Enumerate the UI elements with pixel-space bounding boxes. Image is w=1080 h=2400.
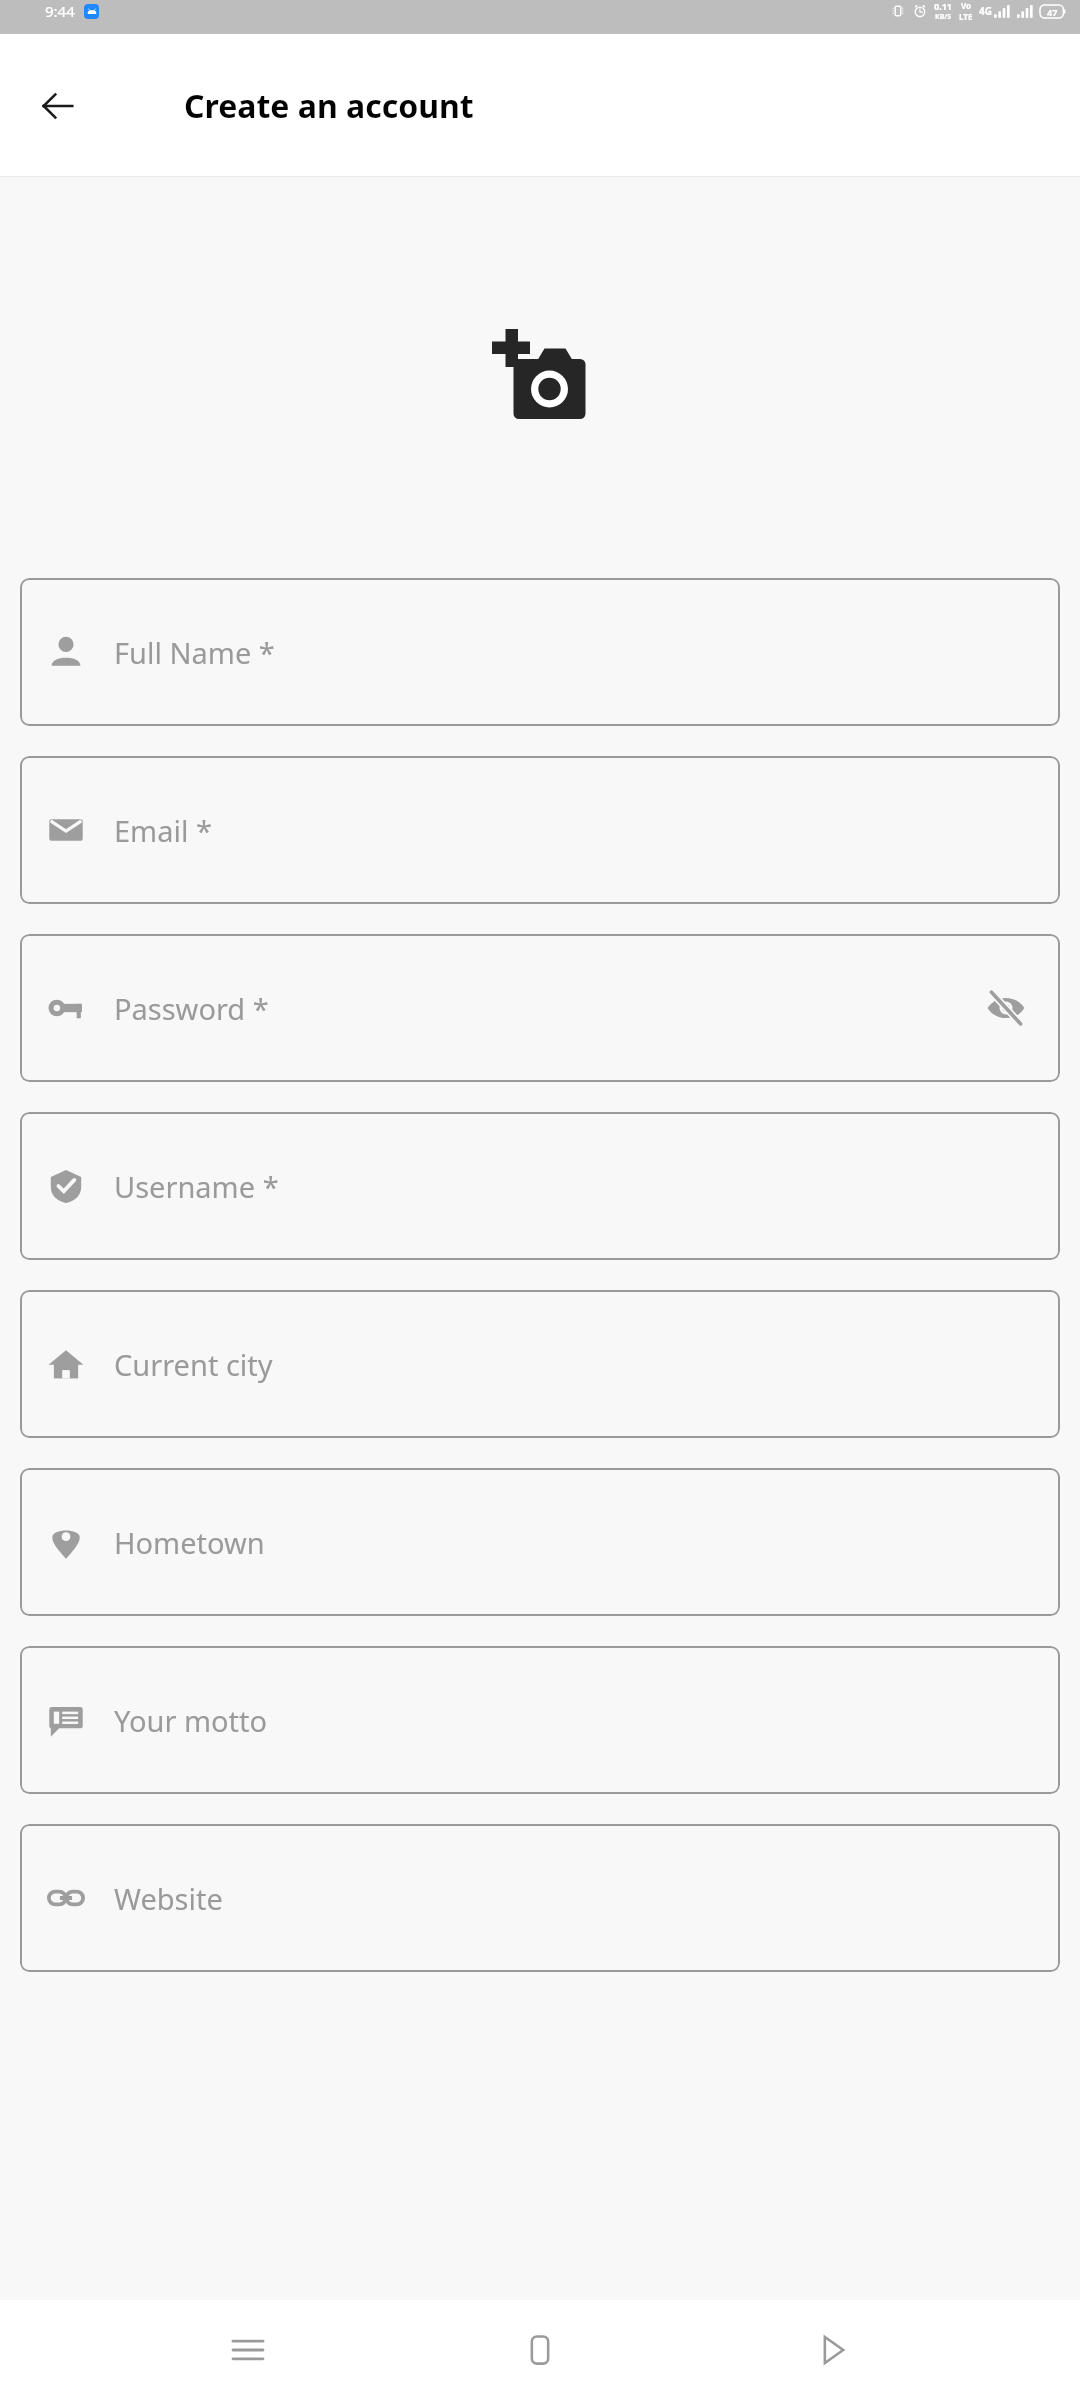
staticText: Full Name * (114, 633, 275, 672)
button[interactable]: Hometown (20, 1468, 1060, 1616)
button[interactable]: Back (788, 2305, 878, 2395)
staticText: 47 (1047, 6, 1058, 18)
staticText: 4G (979, 4, 992, 18)
staticText: LTE (959, 11, 973, 22)
staticText: Current city (114, 1345, 273, 1384)
staticText: Vo (961, 0, 972, 11)
staticText: Username * (114, 1167, 279, 1206)
staticText: Password * (114, 989, 269, 1028)
button[interactable]: Recents (203, 2305, 293, 2395)
staticText: Your motto (114, 1701, 268, 1740)
staticText: Email * (114, 811, 212, 850)
staticText: Hometown (114, 1523, 265, 1562)
staticText: 9:44 (45, 1, 75, 21)
button[interactable]: Full Name * (20, 578, 1060, 726)
staticText: 0.11 (934, 0, 952, 12)
staticText: Create an account (184, 84, 474, 128)
staticText: Website (114, 1879, 223, 1918)
staticText: KB/S (935, 12, 952, 22)
button[interactable]: Website (20, 1824, 1060, 1972)
button[interactable]: Current city (20, 1290, 1060, 1438)
button[interactable]: Password * (20, 934, 1060, 1082)
button[interactable]: Toggle password visibility (976, 978, 1036, 1038)
button[interactable]: Email * (20, 756, 1060, 904)
button[interactable]: Username * (20, 1112, 1060, 1260)
button[interactable]: Add photo (485, 322, 595, 432)
button[interactable]: Back (30, 78, 86, 134)
button[interactable]: Your motto (20, 1646, 1060, 1794)
button[interactable]: Home (495, 2305, 585, 2395)
